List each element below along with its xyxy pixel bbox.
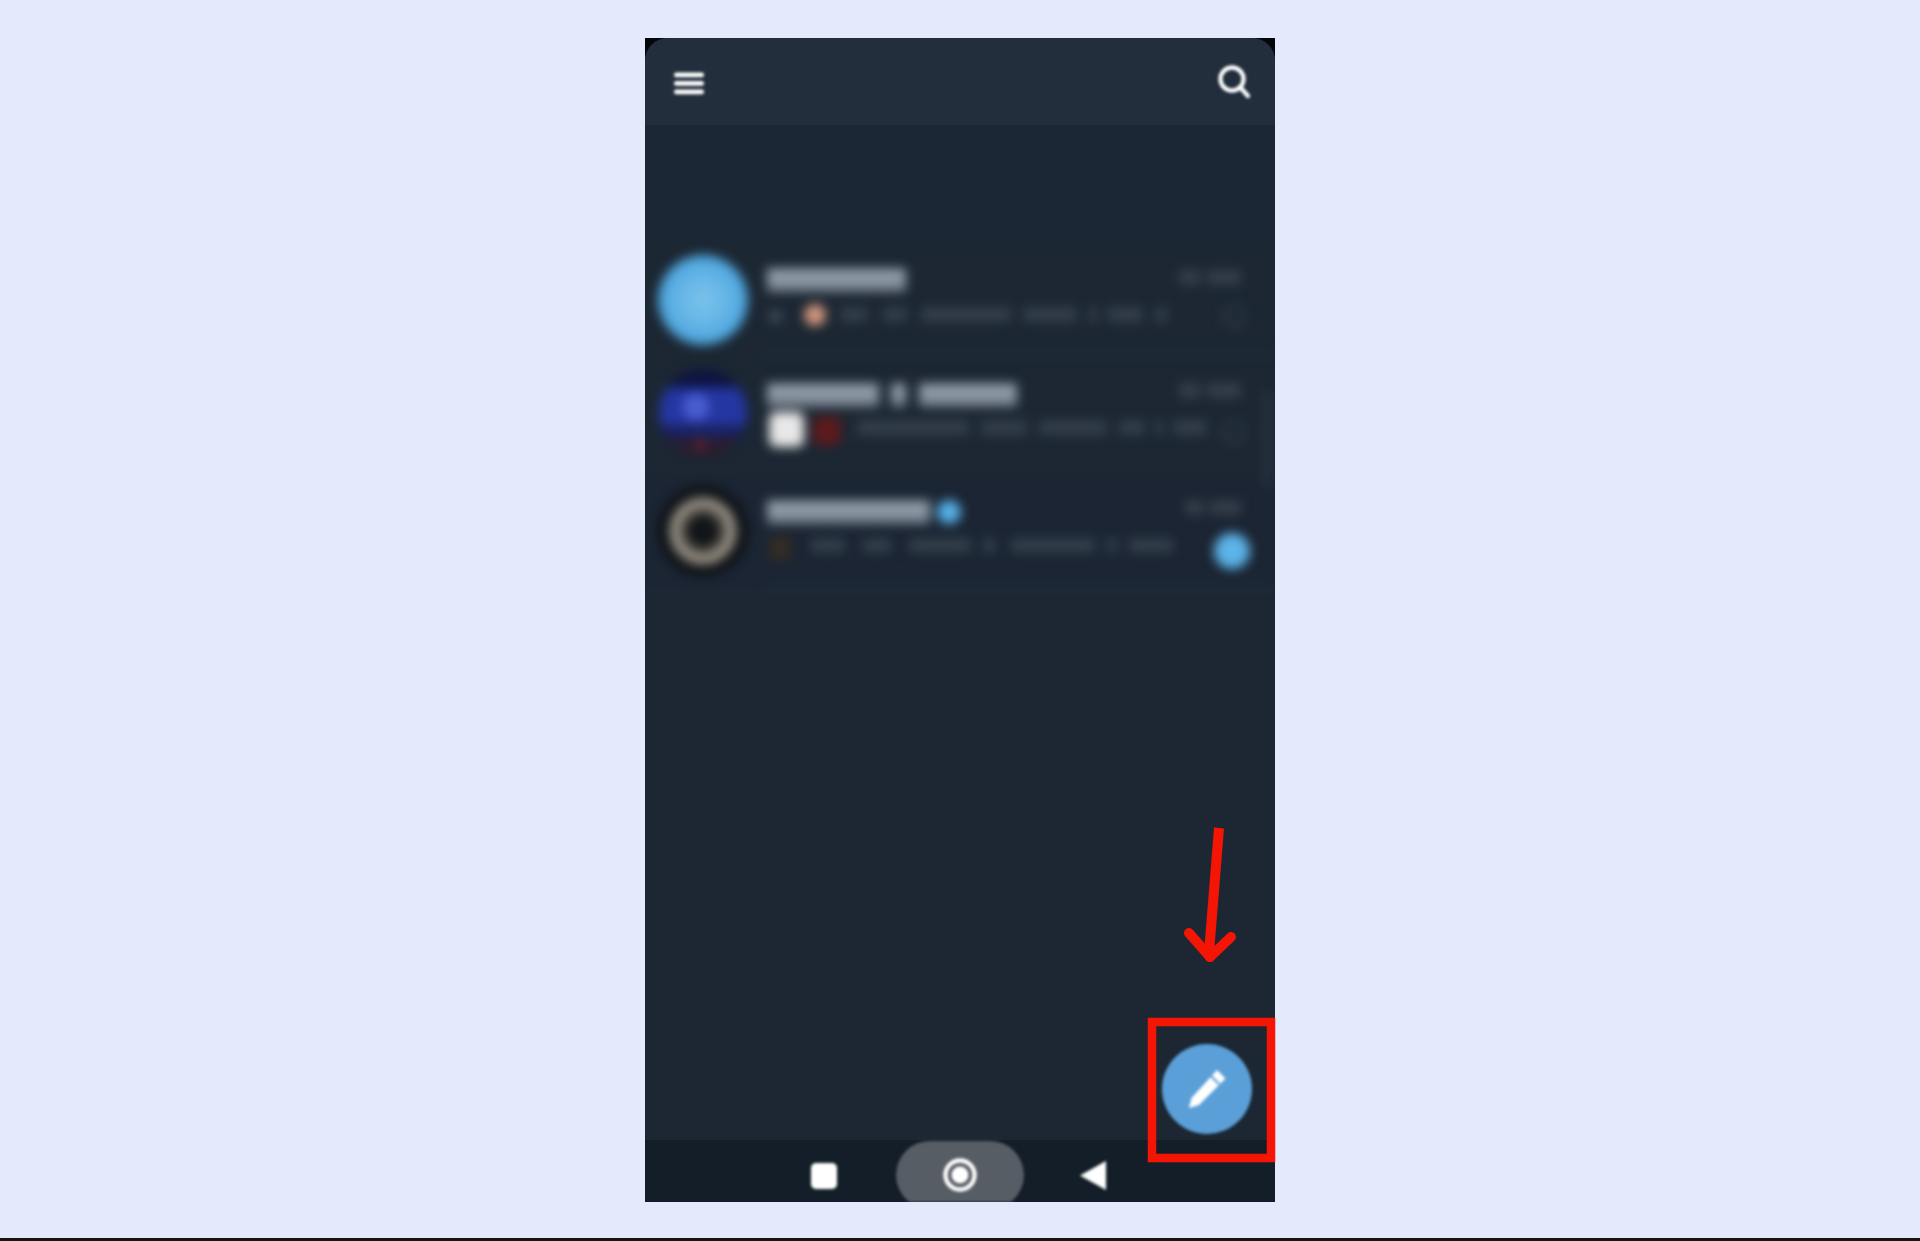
button[interactable]: Open navigation menu [660,52,718,110]
button[interactable]: Chat 1 [645,244,1275,356]
button[interactable]: Search [1203,50,1261,108]
button[interactable]: Home [896,1141,1024,1202]
button[interactable]: Chat 2 [645,356,1275,474]
button[interactable]: Back [1067,1150,1119,1202]
button[interactable]: Recent apps [798,1150,850,1202]
button[interactable]: Chat 3 [645,474,1275,588]
button[interactable]: New message [1162,1044,1252,1134]
